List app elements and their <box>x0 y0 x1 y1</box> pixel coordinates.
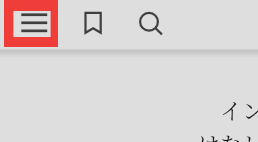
button[interactable]: Bookmark <box>74 2 112 46</box>
staticText: はなしを <box>198 128 258 142</box>
button[interactable]: Search <box>130 2 168 46</box>
staticText: イン <box>220 94 258 126</box>
button[interactable]: Open navigation menu <box>4 0 58 47</box>
